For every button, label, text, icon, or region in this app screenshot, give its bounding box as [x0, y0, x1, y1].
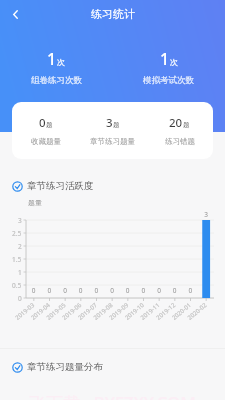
button[interactable]: 章节练习活跃度 [0, 176, 225, 196]
staticText: 章节练习题量分布 [27, 361, 103, 373]
staticText: 次 [170, 57, 178, 67]
button[interactable]: 章节练习题量分布 [0, 357, 225, 377]
button[interactable]: 0 [12, 102, 213, 159]
staticText: 组卷练习次数 [31, 75, 82, 86]
staticText: 3 [106, 115, 113, 131]
staticText: 收藏题量 [31, 137, 61, 146]
staticText: 20 [169, 115, 183, 131]
staticText: 练习统计 [91, 7, 135, 21]
staticText: 题 [46, 121, 53, 129]
staticText: 1 [47, 48, 57, 70]
staticText: 1 [160, 48, 170, 70]
staticText: 0 [39, 115, 46, 131]
staticText: 章节练习活跃度 [27, 180, 94, 192]
button[interactable]: 1 [0, 48, 112, 86]
staticText: 题 [113, 121, 120, 129]
staticText: 模拟考试次数 [143, 75, 194, 86]
button[interactable]: Back [0, 0, 30, 28]
button[interactable]: 1 [112, 48, 225, 86]
staticText: 章节练习题量 [90, 137, 135, 146]
staticText: 题 [183, 121, 190, 129]
staticText: 次 [57, 57, 65, 67]
staticText: 练习错题 [165, 137, 195, 146]
